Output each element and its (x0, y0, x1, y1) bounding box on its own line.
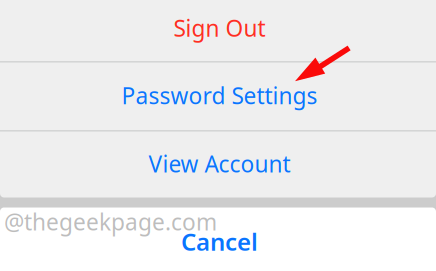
button[interactable]: Sign Out (1, 0, 436, 61)
staticText: @thegeekpage.com (4, 207, 217, 237)
staticText: Password Settings (121, 80, 317, 110)
staticText: Cancel (181, 225, 258, 257)
button[interactable]: View Account (1, 130, 436, 197)
staticText: Sign Out (173, 13, 265, 43)
button[interactable]: Password Settings (1, 61, 436, 130)
button[interactable]: Cancel (0, 207, 436, 271)
staticText: View Account (148, 149, 290, 179)
